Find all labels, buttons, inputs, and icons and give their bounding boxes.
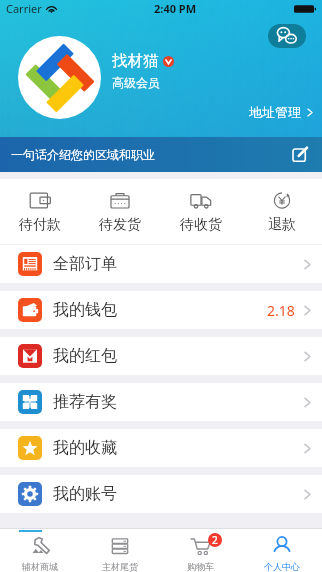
button[interactable]: 待发货 bbox=[80, 179, 160, 244]
button[interactable]: 全部订单 bbox=[0, 245, 322, 283]
staticText: 我的钱包 bbox=[53, 300, 117, 320]
staticText: 一句话介绍您的区域和职业 bbox=[11, 147, 155, 162]
button[interactable]: 推荐有奖 bbox=[0, 383, 322, 421]
button[interactable]: 我的收藏 bbox=[0, 429, 322, 467]
staticText: 2 bbox=[212, 533, 218, 547]
staticText: 购物车 bbox=[187, 561, 214, 572]
staticText: 我的红包 bbox=[53, 346, 117, 366]
staticText: 2.18 bbox=[267, 301, 295, 320]
staticText: 全部订单 bbox=[53, 254, 117, 274]
staticText: 待收货 bbox=[180, 216, 222, 234]
staticText: 找材猫 bbox=[112, 51, 159, 71]
staticText: 待付款 bbox=[19, 216, 61, 234]
staticText: 主材尾货 bbox=[102, 561, 138, 572]
button[interactable]: 辅材商城 bbox=[0, 529, 80, 572]
staticText: 我的收藏 bbox=[53, 438, 117, 458]
staticText: 辅材商城 bbox=[22, 561, 58, 572]
button[interactable]: 待收货 bbox=[160, 179, 241, 244]
button[interactable]: 我的钱包 bbox=[0, 291, 322, 329]
staticText: 待发货 bbox=[99, 216, 141, 234]
button[interactable]: Avatar bbox=[18, 36, 101, 119]
staticText: 地址管理 bbox=[249, 104, 301, 120]
staticText: 我的账号 bbox=[53, 484, 117, 504]
button[interactable]: 退款 bbox=[241, 179, 322, 244]
staticText: 2:40 PM bbox=[154, 1, 197, 16]
staticText: 推荐有奖 bbox=[53, 392, 117, 412]
button[interactable]: 地址管理 bbox=[239, 101, 322, 123]
button[interactable]: 我的红包 bbox=[0, 337, 322, 375]
staticText: 高级会员 bbox=[112, 75, 160, 90]
button[interactable]: 主材尾货 bbox=[80, 529, 160, 572]
button[interactable]: 个人中心 bbox=[241, 529, 322, 572]
button[interactable]: 待付款 bbox=[0, 179, 80, 244]
staticText: 退款 bbox=[268, 216, 296, 234]
staticText: 个人中心 bbox=[264, 561, 300, 572]
button[interactable]: 2 bbox=[160, 529, 241, 572]
button[interactable]: Messages bbox=[268, 24, 306, 48]
button[interactable]: 一句话介绍您的区域和职业 bbox=[0, 137, 322, 172]
staticText: Carrier bbox=[6, 1, 42, 16]
button[interactable]: 我的账号 bbox=[0, 475, 322, 513]
